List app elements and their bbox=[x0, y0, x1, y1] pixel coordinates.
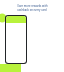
staticText: Earn more rewards with bbox=[17, 4, 48, 8]
staticText: cashback on every card bbox=[17, 8, 47, 12]
